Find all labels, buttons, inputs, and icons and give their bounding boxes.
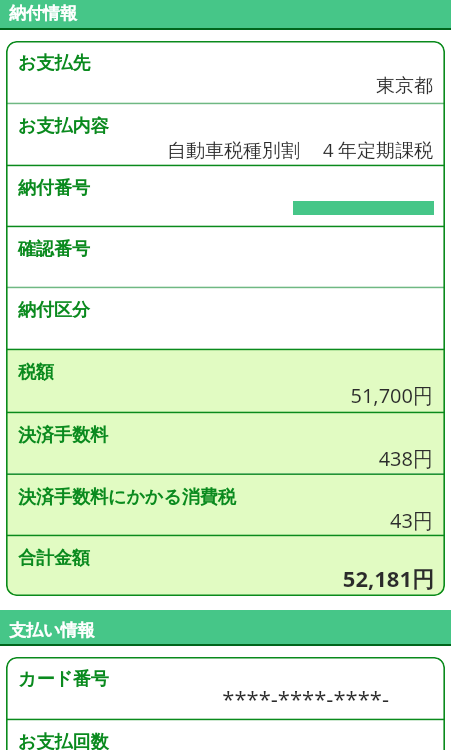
staticText: 438円 xyxy=(6,445,433,472)
staticText: 支払い情報 xyxy=(9,620,95,641)
button[interactable]: お支払回数 xyxy=(6,720,445,750)
button[interactable]: 税額 xyxy=(6,350,445,412)
staticText: 税額 xyxy=(18,361,54,384)
button[interactable]: 決済手数料にかかる消費税 xyxy=(6,475,445,535)
staticText: お支払回数 xyxy=(18,731,109,750)
staticText: ****-****-****- xyxy=(6,683,389,713)
button[interactable]: カード番号 xyxy=(6,657,445,719)
staticText: 43円 xyxy=(6,507,433,534)
button[interactable]: 納付番号 xyxy=(6,166,445,226)
button[interactable]: 決済手数料 xyxy=(6,413,445,473)
staticText: 確認番号 xyxy=(18,238,90,261)
button[interactable]: 納付情報 xyxy=(0,0,451,30)
staticText: 納付情報 xyxy=(9,3,77,24)
staticText: お支払先 xyxy=(18,52,91,75)
staticText: 52,181円 xyxy=(6,563,434,593)
staticText: カード番号 xyxy=(18,668,109,691)
staticText: 決済手数料 xyxy=(18,424,108,447)
button[interactable]: 納付区分 xyxy=(6,288,445,349)
staticText: 東京都 xyxy=(6,74,433,98)
staticText: お支払内容 xyxy=(18,115,109,138)
staticText: 決済手数料にかかる消費税 xyxy=(18,486,236,509)
staticText: 納付区分 xyxy=(18,299,90,322)
staticText: 納付番号 xyxy=(18,177,90,200)
button[interactable]: お支払先 xyxy=(6,41,445,103)
button[interactable]: 確認番号 xyxy=(6,227,445,287)
button[interactable]: 合計金額 xyxy=(6,536,445,596)
button[interactable]: お支払内容 xyxy=(6,104,445,165)
staticText: 自動車税種別割 ４年定期課税 xyxy=(6,137,433,163)
staticText: 合計金額 xyxy=(18,547,90,570)
staticText: 51,700円 xyxy=(6,382,433,409)
button[interactable]: 支払い情報 xyxy=(0,610,451,645)
